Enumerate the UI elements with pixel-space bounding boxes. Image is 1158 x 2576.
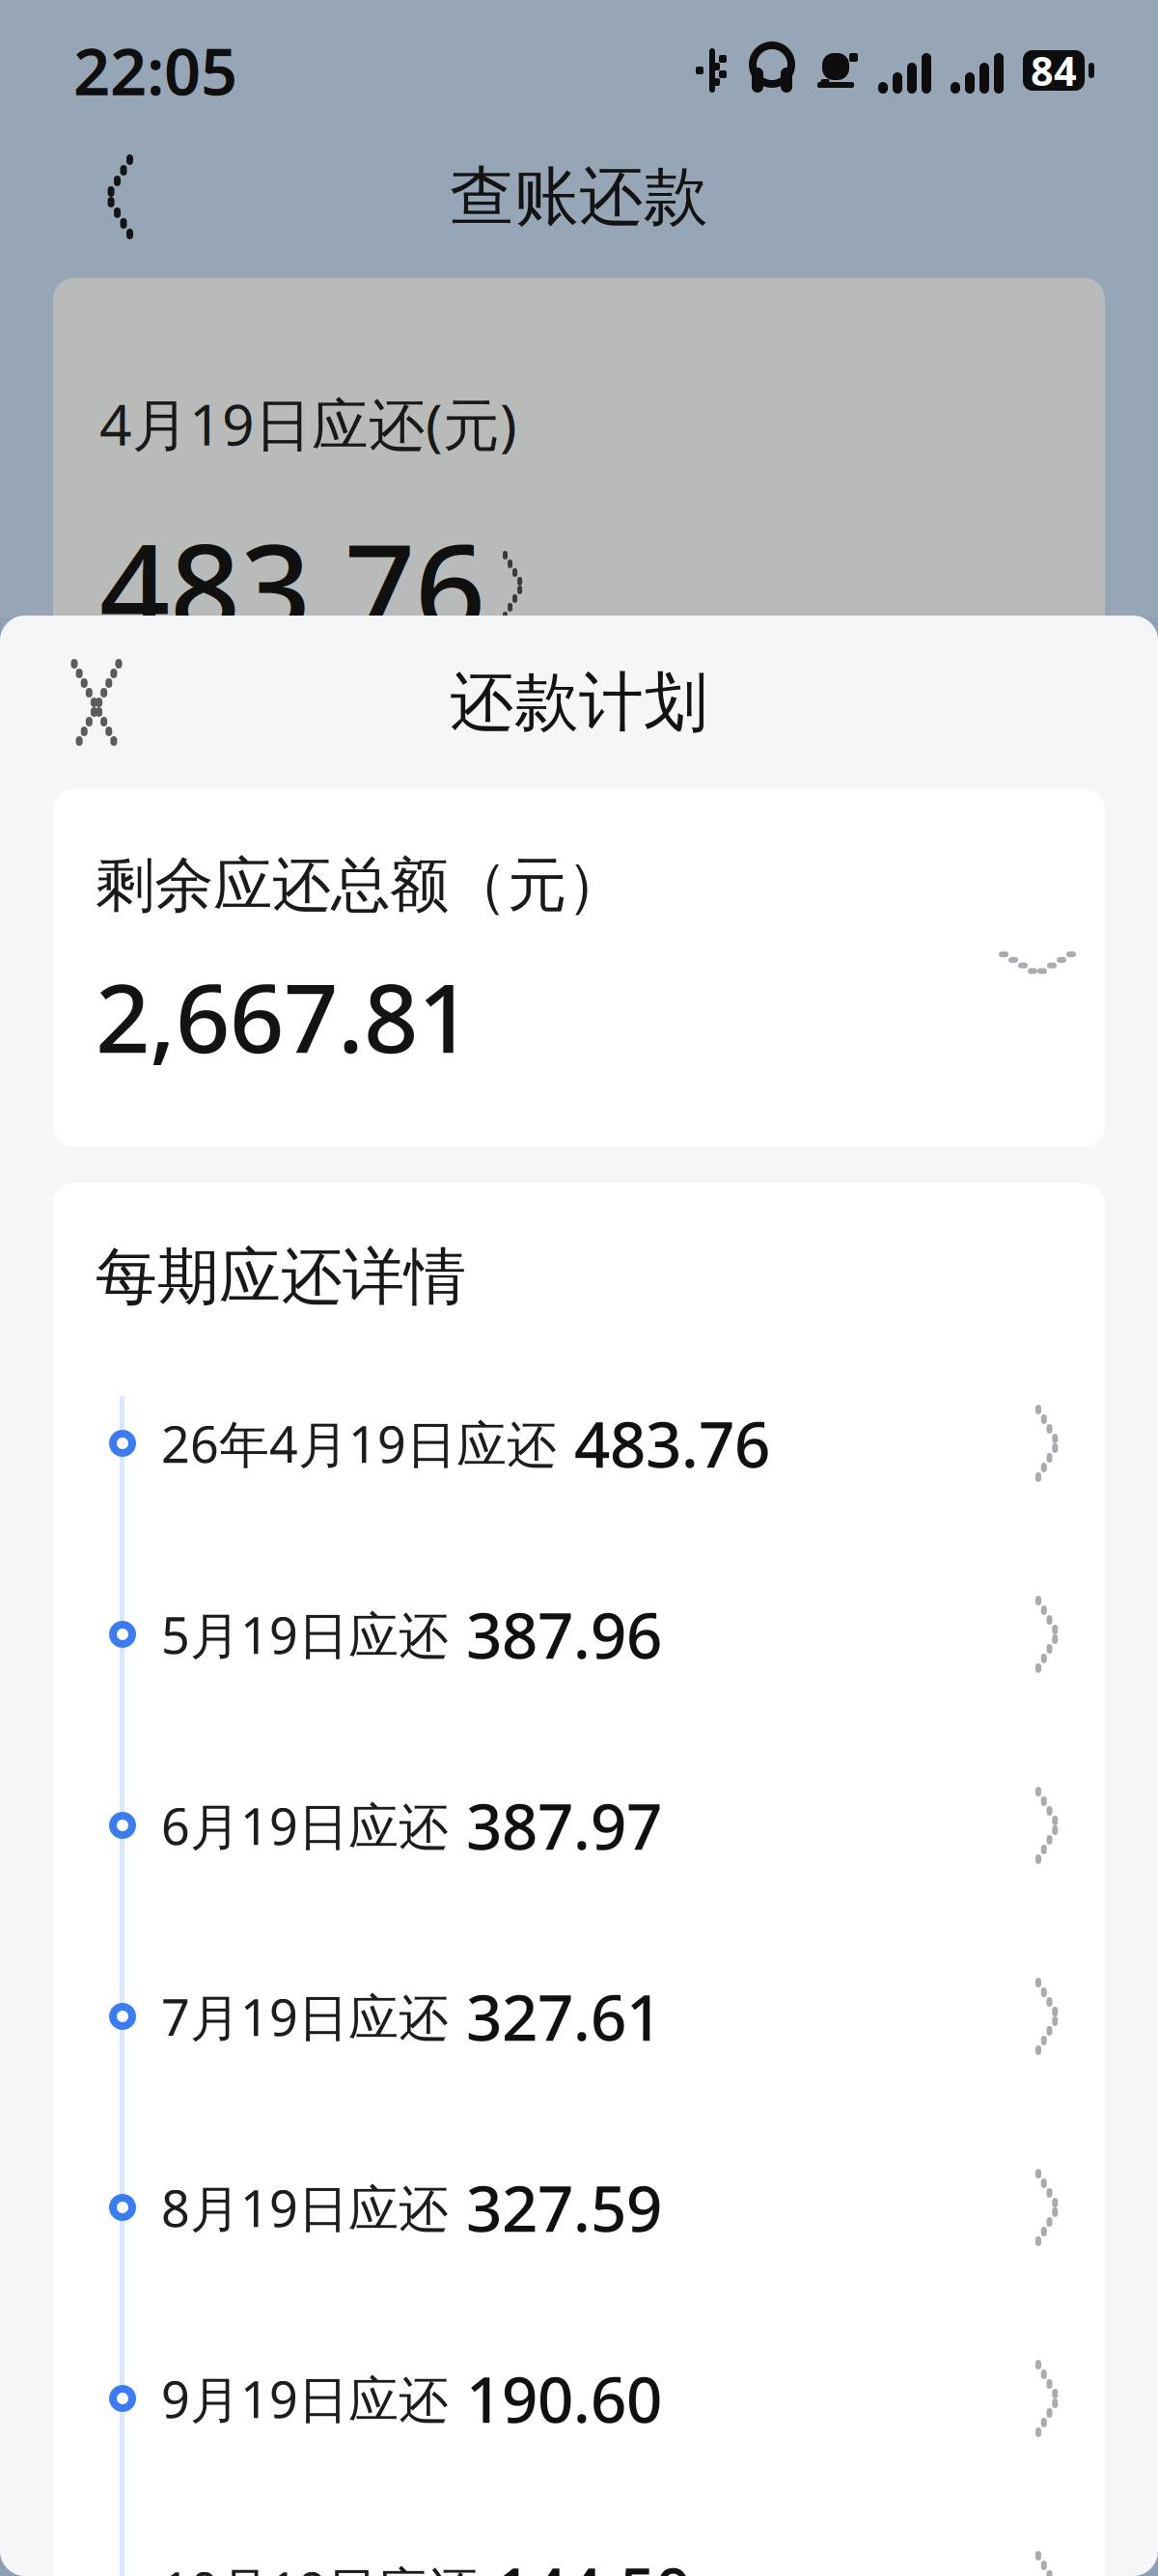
staticText: 190.60 bbox=[466, 2357, 662, 2440]
button[interactable]: 8月19日应还 bbox=[53, 2112, 1105, 2303]
button[interactable]: 返回 bbox=[17, 139, 133, 255]
staticText: 7月19日应还 bbox=[161, 1983, 449, 2050]
button[interactable]: 10月19日应还 bbox=[53, 2494, 1105, 2576]
staticText: 剩余应还总额（元） bbox=[96, 849, 625, 922]
staticText: 9月19日应还 bbox=[161, 2365, 449, 2432]
staticText: 26年4月19日应还 bbox=[161, 1410, 557, 1477]
button[interactable]: 26年4月19日应还 bbox=[53, 1348, 1105, 1539]
staticText: 22:05 bbox=[73, 28, 237, 113]
staticText: 387.97 bbox=[466, 1784, 662, 1867]
staticText: 8月19日应还 bbox=[161, 2174, 449, 2241]
button[interactable]: 7月19日应还 bbox=[53, 1921, 1105, 2112]
staticText: 4月19日应还(元) bbox=[99, 386, 517, 461]
button[interactable]: 剩余应还总额（元） bbox=[53, 789, 1105, 1147]
staticText: 483.76 bbox=[99, 504, 485, 668]
button[interactable]: 5月19日应还 bbox=[53, 1539, 1105, 1730]
staticText: 144.50 bbox=[495, 2548, 691, 2576]
staticText: 还款计划 bbox=[450, 663, 708, 742]
staticText: 327.61 bbox=[466, 1975, 662, 2058]
button[interactable]: 关闭 bbox=[39, 644, 154, 760]
staticText: 483.76 bbox=[574, 1401, 770, 1485]
staticText: 查账还款 bbox=[450, 157, 708, 236]
button[interactable]: 9月19日应还 bbox=[53, 2303, 1105, 2494]
staticText: 5月19日应还 bbox=[161, 1601, 449, 1668]
staticText: 6月19日应还 bbox=[161, 1792, 449, 1859]
staticText: 327.59 bbox=[466, 2166, 662, 2249]
button[interactable]: 6月19日应还 bbox=[53, 1730, 1105, 1921]
staticText: 10月19日应还 bbox=[161, 2556, 478, 2576]
staticText: 387.96 bbox=[466, 1592, 662, 1676]
staticText: 84 bbox=[1031, 44, 1077, 97]
staticText: 2,667.81 bbox=[96, 953, 472, 1079]
staticText: 每期应还详情 bbox=[96, 1239, 466, 1315]
